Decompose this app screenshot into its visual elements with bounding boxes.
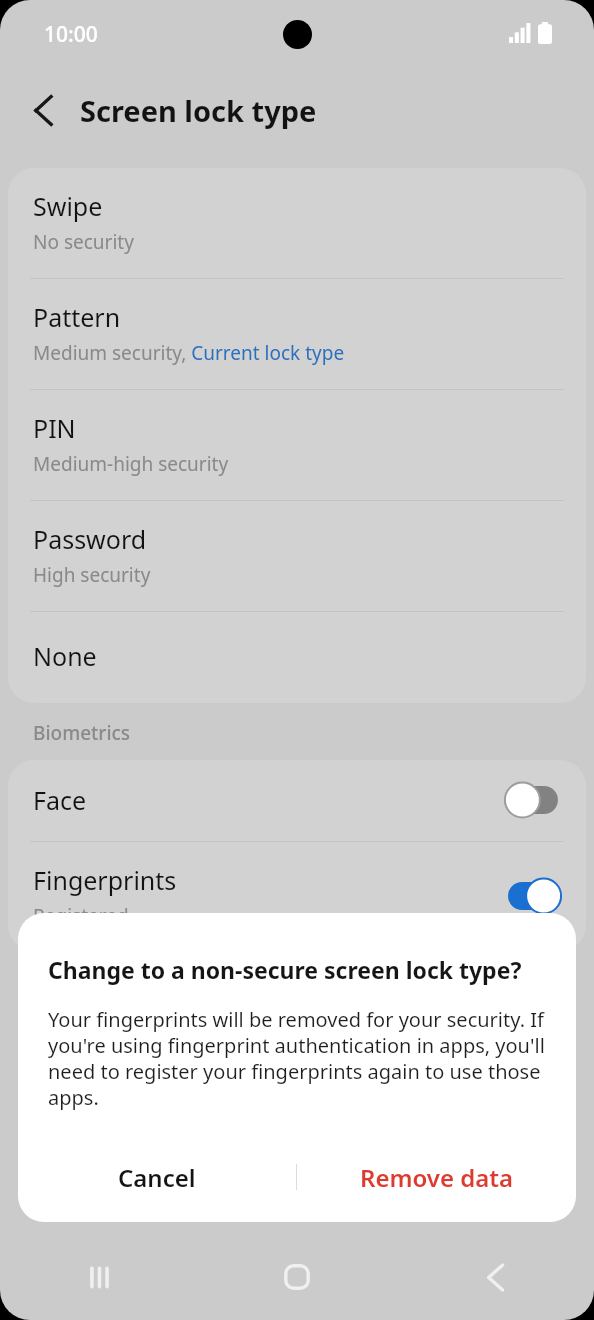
button[interactable]: Recent apps <box>0 1234 198 1320</box>
button[interactable]: PIN <box>8 390 586 500</box>
staticText: Biometrics <box>33 720 131 746</box>
staticText: Swipe <box>33 189 103 223</box>
button[interactable]: Off <box>504 781 562 819</box>
button[interactable]: Back <box>396 1234 594 1320</box>
button[interactable]: Remove data <box>297 1132 576 1222</box>
staticText: 10:00 <box>44 20 98 49</box>
button[interactable]: Swipe <box>8 168 586 278</box>
button[interactable]: Face <box>8 760 586 841</box>
button[interactable]: None <box>8 612 586 703</box>
staticText: None <box>33 639 97 673</box>
button[interactable]: On <box>504 877 562 915</box>
staticText: Cancel <box>118 1161 196 1194</box>
staticText: Face <box>33 783 87 817</box>
staticText: Registered <box>33 903 129 929</box>
staticText: High security <box>33 562 151 588</box>
button[interactable]: Pattern <box>8 279 586 389</box>
staticText: Medium security, Current lock type <box>33 340 345 366</box>
button[interactable]: Password <box>8 501 586 611</box>
staticText: Change to a non-secure screen lock type? <box>48 954 522 985</box>
button[interactable]: Cancel <box>18 1132 296 1222</box>
button[interactable]: Fingerprints <box>8 842 586 951</box>
staticText: PIN <box>33 411 76 445</box>
staticText: Your fingerprints will be removed for yo… <box>48 1006 550 1111</box>
staticText: Password <box>33 522 147 556</box>
button[interactable]: Back <box>20 87 66 133</box>
staticText: Remove data <box>360 1161 514 1194</box>
staticText: Fingerprints <box>33 863 177 897</box>
staticText: No security <box>33 229 134 255</box>
staticText: Screen lock type <box>80 91 317 130</box>
button[interactable]: Home <box>198 1234 396 1320</box>
staticText: Medium-high security <box>33 451 229 477</box>
staticText: Pattern <box>33 300 121 334</box>
